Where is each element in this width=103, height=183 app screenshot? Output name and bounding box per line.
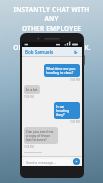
button[interactable]: Is we heading they? (54, 102, 80, 119)
button[interactable]: What time are you heading to class? (44, 64, 80, 77)
button[interactable]: Bob Samuels (22, 47, 82, 56)
button[interactable]: In a bit. (24, 85, 40, 94)
staticText: OF WHERE THEY WORK. (13, 43, 91, 52)
button[interactable]: Send a message... (24, 159, 71, 165)
staticText: Can you send me a copy of those last lec… (26, 129, 56, 142)
staticText: Send a message... (26, 160, 57, 165)
staticText: 7:05 PM (70, 120, 80, 124)
staticText: Is we heading they? (56, 104, 78, 117)
staticText: 7:06 PM (24, 145, 34, 149)
button[interactable]: Can you send me a copy of those last lec… (24, 127, 58, 144)
staticText: 7:06 PM (24, 95, 34, 99)
staticText: OTHER EMPLOYEE REGARDLESS (6, 24, 97, 42)
staticText: Bob Samuels (25, 49, 54, 55)
staticText: In a bit. (26, 87, 38, 92)
button[interactable]: Send (73, 158, 80, 165)
staticText: What time are you heading to class? (46, 66, 78, 75)
staticText: INSTANTLY CHAT WITH ANY (6, 5, 97, 23)
button[interactable]: Call (72, 48, 79, 55)
staticText: 7:05 PM (70, 78, 80, 82)
